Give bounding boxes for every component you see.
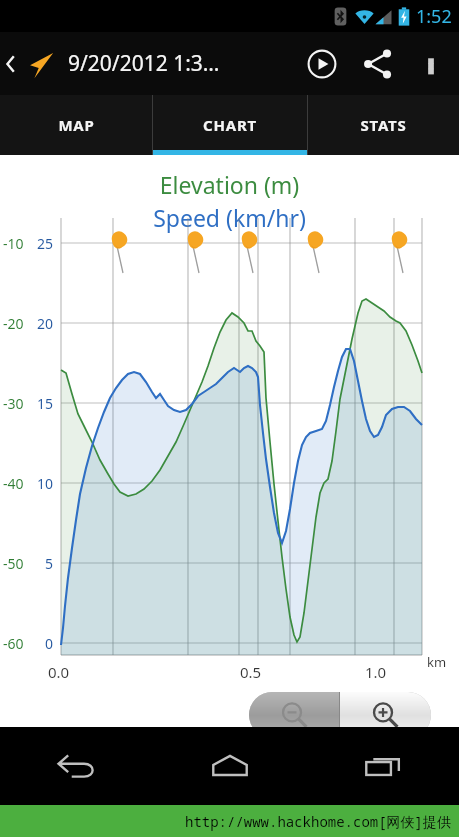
button[interactable]: Navigate up [0, 32, 60, 95]
staticText: -20 [3, 314, 24, 333]
staticText: 9/20/2012 1:3… [68, 49, 220, 78]
button[interactable]: MAP [0, 95, 152, 155]
button[interactable]: Back [0, 727, 153, 805]
button[interactable]: CHART [153, 95, 307, 155]
staticText: -40 [3, 474, 24, 493]
staticText: -10 [3, 234, 24, 253]
button[interactable]: STATS [308, 95, 459, 155]
staticText: 15 [37, 394, 54, 413]
staticText: Speed (km/hr) [0, 202, 459, 233]
staticText: CHART [203, 115, 257, 135]
staticText: km [427, 653, 447, 671]
button[interactable]: Play [295, 32, 349, 95]
staticText: 1:52 [416, 4, 452, 29]
staticText: -50 [3, 554, 24, 573]
staticText: MAP [58, 115, 95, 135]
staticText: 20 [37, 314, 54, 333]
staticText: -30 [3, 394, 24, 413]
staticText: 25 [37, 234, 54, 253]
staticText: STATS [360, 115, 407, 135]
button[interactable]: More options [407, 32, 455, 95]
button[interactable]: Zoom in [340, 692, 431, 738]
staticText: 0 [45, 634, 54, 653]
staticText: -60 [3, 634, 24, 653]
button[interactable]: Share [349, 32, 407, 95]
button[interactable]: Home [153, 727, 306, 805]
staticText: 0.5 [240, 662, 262, 682]
staticText: 5 [45, 554, 54, 573]
staticText: 10 [37, 474, 54, 493]
button[interactable]: Zoom out [249, 692, 339, 738]
staticText: Elevation (m) [0, 169, 459, 200]
staticText: 0.0 [48, 662, 70, 682]
staticText: http://www.hackhome.com[网侠]提供 [185, 812, 451, 831]
staticText: 1.0 [365, 662, 387, 682]
button[interactable]: Recent apps [306, 727, 459, 805]
